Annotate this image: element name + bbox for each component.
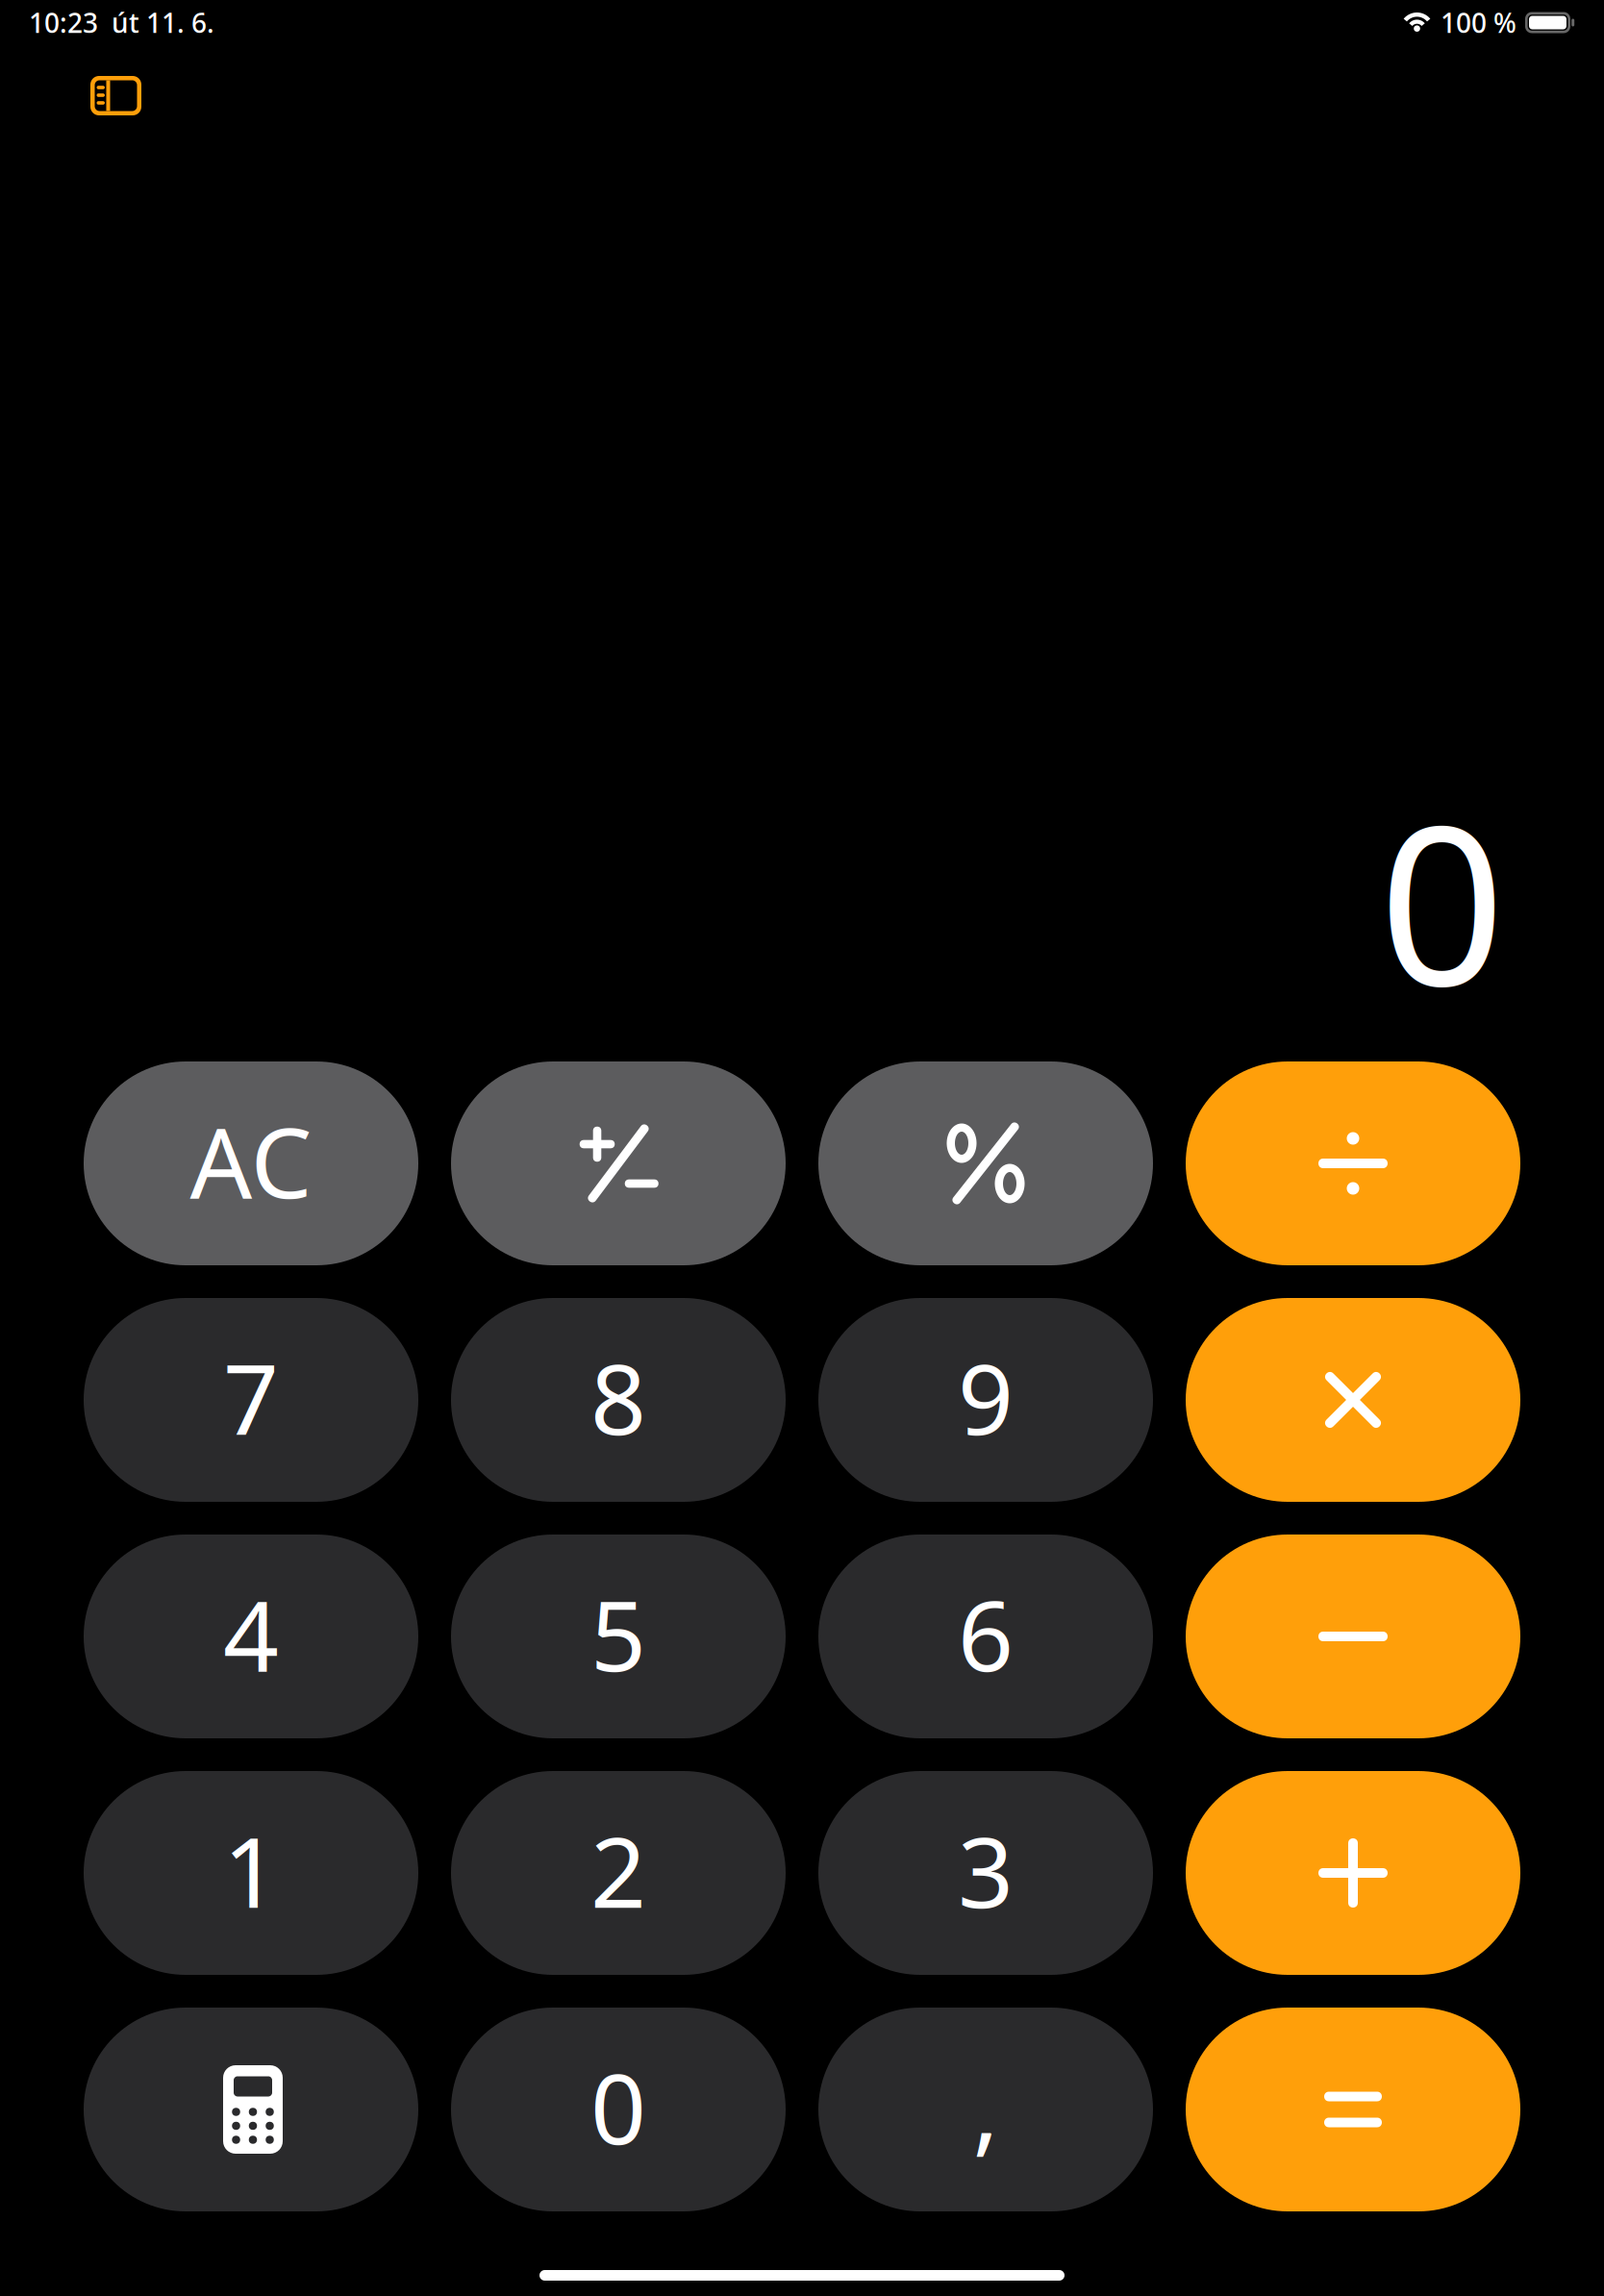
staticText: 8 — [590, 1332, 646, 1462]
button[interactable]: Plus Minus — [451, 1061, 786, 1265]
staticText: 0 — [1379, 754, 1505, 1046]
button[interactable]: 3 — [818, 1771, 1153, 1975]
staticText: 100 % — [1441, 5, 1516, 40]
button[interactable]: 2 — [451, 1771, 786, 1975]
button[interactable]: Show Sidebar — [79, 64, 153, 127]
button[interactable]: Minus — [1186, 1535, 1520, 1738]
staticText: 1 — [223, 1805, 279, 1935]
button[interactable]: Percent — [818, 1061, 1153, 1265]
staticText: 9 — [958, 1332, 1014, 1462]
button[interactable]: Multiply — [1186, 1298, 1520, 1502]
staticText: 6 — [958, 1569, 1014, 1698]
button[interactable]: 4 — [84, 1535, 418, 1738]
staticText: , — [973, 2042, 999, 2171]
button[interactable]: Decimal separator — [818, 2008, 1153, 2211]
staticText: 5 — [590, 1569, 646, 1698]
button[interactable]: Plus — [1186, 1771, 1520, 1975]
button[interactable]: 1 — [84, 1771, 418, 1975]
staticText: AC — [190, 1096, 312, 1225]
staticText: út 11. 6. — [98, 5, 214, 40]
button[interactable]: Keypad — [84, 2008, 418, 2211]
button[interactable]: All Clear — [84, 1061, 418, 1265]
button[interactable]: Divide — [1186, 1061, 1520, 1265]
button[interactable]: 6 — [818, 1535, 1153, 1738]
staticText: 4 — [223, 1569, 279, 1698]
button[interactable]: 8 — [451, 1298, 786, 1502]
staticText: 0 — [590, 2042, 646, 2171]
staticText: 2 — [590, 1805, 646, 1935]
staticText: 3 — [958, 1805, 1014, 1935]
button[interactable]: Equals — [1186, 2008, 1520, 2211]
staticText: 7 — [223, 1332, 279, 1462]
button[interactable]: 9 — [818, 1298, 1153, 1502]
staticText: 10:23 — [29, 5, 98, 40]
button[interactable]: 7 — [84, 1298, 418, 1502]
button[interactable]: 5 — [451, 1535, 786, 1738]
button[interactable]: 0 — [451, 2008, 786, 2211]
